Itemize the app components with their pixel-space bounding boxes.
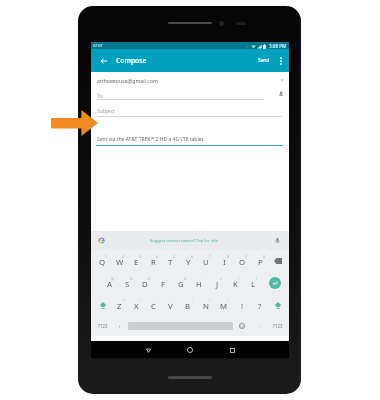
button[interactable]: V bbox=[162, 294, 179, 316]
staticText: F bbox=[161, 279, 166, 290]
button[interactable]: ? bbox=[251, 294, 269, 316]
button[interactable]: F bbox=[154, 272, 172, 294]
staticText: - bbox=[202, 276, 204, 281]
staticText: V bbox=[168, 301, 173, 312]
staticText: : bbox=[174, 298, 175, 303]
staticText: _ bbox=[166, 276, 168, 281]
button[interactable]: Shift bbox=[269, 294, 287, 316]
staticText: AT&T bbox=[93, 43, 103, 49]
button[interactable]: M bbox=[215, 294, 233, 316]
staticText: K bbox=[233, 279, 238, 290]
button[interactable]: I bbox=[215, 250, 233, 272]
staticText: C bbox=[151, 301, 156, 312]
button[interactable]: Send bbox=[256, 49, 272, 72]
staticText: / bbox=[209, 298, 211, 303]
button[interactable]: Voice input bbox=[274, 237, 281, 244]
staticText: ?123 bbox=[98, 323, 108, 329]
button[interactable]: Shift bbox=[94, 294, 111, 316]
button[interactable]: Z bbox=[111, 294, 128, 316]
staticText: O bbox=[239, 257, 246, 268]
button[interactable]: H bbox=[190, 272, 208, 294]
button[interactable]: L bbox=[244, 272, 262, 294]
button[interactable]: D bbox=[136, 272, 154, 294]
button[interactable]: Emoji bbox=[233, 316, 251, 336]
button[interactable]: U bbox=[197, 250, 215, 272]
button[interactable]: atthowtouse@gmail.com bbox=[91, 72, 289, 88]
button[interactable]: W bbox=[111, 250, 128, 272]
staticText: S bbox=[125, 279, 130, 290]
staticText: ?123 bbox=[273, 323, 283, 329]
staticText: 1 bbox=[105, 254, 108, 259]
button[interactable]: ?123 bbox=[94, 316, 111, 336]
button[interactable]: Recent apps bbox=[229, 347, 235, 353]
staticText: . bbox=[259, 321, 261, 329]
staticText: , bbox=[119, 321, 121, 329]
staticText: W bbox=[116, 257, 124, 268]
staticText: + bbox=[220, 276, 223, 281]
button[interactable]: Enter bbox=[262, 272, 287, 294]
staticText: Z bbox=[117, 301, 122, 312]
staticText: Compose bbox=[116, 56, 147, 65]
staticText: ! bbox=[241, 301, 244, 312]
staticText: 6 bbox=[191, 254, 194, 259]
staticText: D bbox=[142, 279, 148, 290]
staticText: 5 bbox=[173, 254, 176, 259]
staticText: ~ bbox=[227, 298, 230, 303]
staticText: N bbox=[203, 301, 209, 312]
other: Add from contacts bbox=[278, 91, 284, 97]
button[interactable]: , bbox=[111, 316, 128, 336]
staticText: 0 bbox=[263, 254, 266, 259]
staticText: 8 bbox=[227, 254, 230, 259]
button[interactable]: Google bbox=[98, 237, 105, 244]
button[interactable]: G bbox=[172, 272, 190, 294]
button[interactable]: Q bbox=[94, 250, 111, 272]
button[interactable]: Navigate up bbox=[91, 49, 116, 72]
staticText: ) bbox=[256, 276, 258, 281]
button[interactable]: Back bbox=[145, 347, 151, 353]
staticText: @ bbox=[111, 276, 115, 281]
button[interactable]: E bbox=[128, 250, 145, 272]
button[interactable]: ?123 bbox=[269, 316, 287, 336]
staticText: M bbox=[220, 301, 228, 312]
staticText: Subject bbox=[97, 107, 115, 114]
staticText: Suggest contact names? Tap for info bbox=[150, 238, 218, 243]
button[interactable]: ! bbox=[233, 294, 251, 316]
button[interactable]: A bbox=[100, 272, 118, 294]
button[interactable]: More options bbox=[272, 49, 289, 72]
staticText: ? bbox=[258, 301, 262, 312]
button[interactable]: P bbox=[251, 250, 269, 272]
button[interactable]: To bbox=[91, 88, 289, 99]
staticText: " bbox=[140, 298, 142, 303]
button[interactable]: Y bbox=[179, 250, 197, 272]
staticText: B bbox=[185, 301, 191, 312]
staticText: Y bbox=[186, 257, 191, 268]
staticText: R bbox=[151, 257, 156, 268]
staticText: Send bbox=[258, 57, 270, 64]
button[interactable]: Home bbox=[187, 347, 193, 353]
staticText: ( bbox=[238, 276, 240, 281]
button[interactable]: N bbox=[197, 294, 215, 316]
button[interactable]: Subject bbox=[91, 100, 289, 117]
button[interactable]: O bbox=[233, 250, 251, 272]
staticText: 3 bbox=[139, 254, 142, 259]
staticText: 7 bbox=[209, 254, 212, 259]
button[interactable]: T bbox=[162, 250, 179, 272]
button[interactable]: R bbox=[145, 250, 162, 272]
staticText: G bbox=[178, 279, 184, 290]
staticText: L bbox=[251, 279, 256, 290]
button[interactable]: J bbox=[208, 272, 226, 294]
staticText: atthowtouse@gmail.com bbox=[97, 77, 158, 84]
button[interactable]: C bbox=[145, 294, 162, 316]
staticText: 4 bbox=[156, 254, 159, 259]
button[interactable]: B bbox=[179, 294, 197, 316]
button[interactable]: S bbox=[118, 272, 136, 294]
button[interactable]: Backspace bbox=[269, 250, 287, 272]
button[interactable]: X bbox=[128, 294, 145, 316]
staticText: H bbox=[196, 279, 202, 290]
staticText: ; bbox=[192, 298, 193, 303]
staticText: To bbox=[97, 92, 103, 99]
staticText: J bbox=[216, 279, 219, 290]
button[interactable]: K bbox=[226, 272, 244, 294]
